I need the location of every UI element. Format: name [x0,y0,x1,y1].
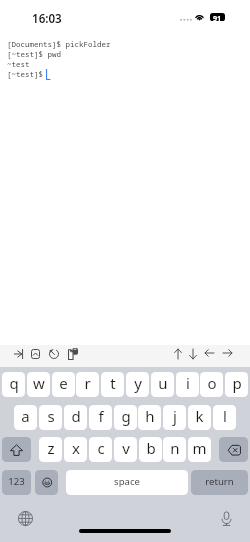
staticText: z [47,438,55,458]
button[interactable]: w [27,372,50,397]
button[interactable]: a [14,405,37,430]
staticText: y [134,373,142,393]
button[interactable]: v [114,437,137,462]
button[interactable]: c [89,437,112,462]
staticText: k [195,406,204,426]
staticText: 91 [213,13,222,21]
button[interactable]: Dictate [215,507,237,529]
staticText: v [122,438,130,458]
staticText: [Documents]$ pickFolder [7,39,111,49]
staticText: h [145,406,155,426]
button[interactable]: space [66,470,188,495]
button[interactable]: b [139,437,162,462]
button[interactable]: f [89,405,112,430]
staticText: t [110,373,116,393]
staticText: p [232,373,242,393]
button[interactable]: Control [28,346,43,362]
staticText: c [97,438,105,458]
staticText: 16:03 [32,11,62,27]
button[interactable]: m [188,437,211,462]
button[interactable]: t [101,372,124,397]
staticText: [~test]$ [7,69,48,79]
staticText: b [146,438,156,458]
button[interactable]: Backspace [219,437,248,462]
button[interactable]: Left [202,346,217,360]
staticText: ~test [7,59,30,69]
staticText: 123 [8,475,25,488]
button[interactable]: k [188,405,211,430]
button[interactable]: q [2,372,25,397]
button[interactable]: Shift [2,437,31,462]
button[interactable]: g [114,405,137,430]
staticText: space [114,475,140,488]
button[interactable]: s [39,405,62,430]
button[interactable]: Right [220,346,235,360]
button[interactable]: return [191,470,248,495]
staticText: x [72,438,80,458]
staticText: j [173,406,177,426]
staticText: w [33,373,45,393]
button[interactable]: j [163,405,186,430]
staticText: d [71,406,81,426]
button[interactable]: e [52,372,75,397]
staticText: f [98,406,104,426]
button[interactable]: Emoji [35,470,58,495]
button[interactable]: p [225,372,248,397]
staticText: r [84,373,91,393]
staticText: [~test]$ pwd [7,49,61,59]
button[interactable]: i [176,372,199,397]
staticText: l [223,406,227,426]
button[interactable]: Paste [65,345,81,363]
button[interactable]: Switch keyboard [14,507,36,529]
button[interactable]: Up [171,346,185,362]
button[interactable]: r [76,372,99,397]
button[interactable]: x [64,437,87,462]
staticText: o [207,373,217,393]
button[interactable]: 123 [2,470,31,495]
staticText: g [121,406,131,426]
button[interactable]: Tab [11,346,26,362]
button[interactable]: u [151,372,174,397]
staticText: a [21,406,30,426]
button[interactable]: d [64,405,87,430]
staticText: q [9,373,19,393]
button[interactable]: n [163,437,186,462]
staticText: n [170,438,180,458]
button[interactable]: y [126,372,149,397]
button[interactable]: Down [186,346,200,362]
staticText: e [59,373,68,393]
button[interactable]: z [39,437,62,462]
button[interactable]: History [46,346,62,362]
staticText: s [47,406,55,426]
button[interactable]: o [200,372,223,397]
button[interactable]: l [213,405,236,430]
staticText: m [192,438,207,458]
staticText: u [158,373,168,393]
staticText: return [205,475,234,488]
staticText: i [186,373,190,393]
button[interactable]: h [138,405,161,430]
